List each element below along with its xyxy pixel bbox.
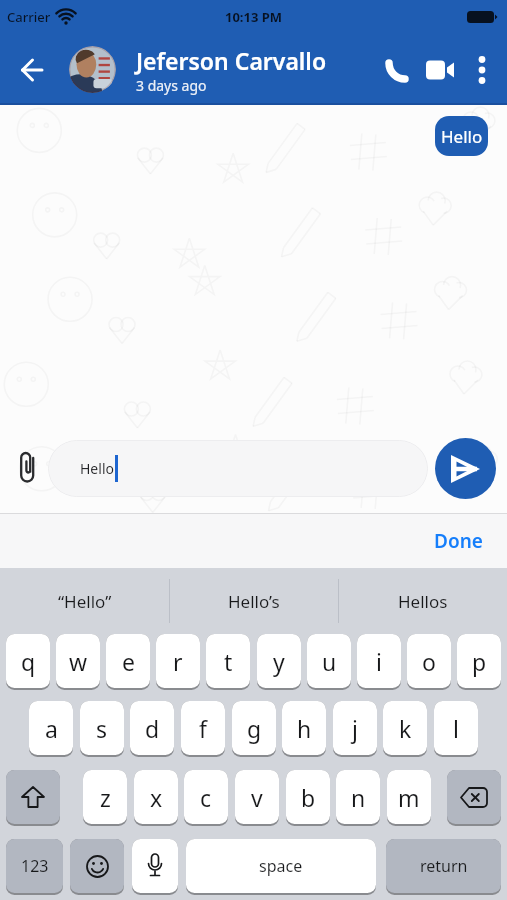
staticText: h — [297, 713, 312, 744]
button[interactable] — [69, 46, 116, 93]
button[interactable]: Done — [434, 528, 483, 554]
button[interactable] — [132, 839, 178, 895]
button[interactable]: e — [106, 634, 150, 690]
staticText: Hello’s — [228, 590, 280, 613]
staticText: return — [420, 855, 468, 877]
staticText: “Hello” — [58, 590, 112, 613]
button[interactable]: Hello — [48, 440, 428, 497]
staticText: t — [224, 646, 233, 677]
button[interactable]: x — [134, 770, 178, 826]
staticText: u — [322, 646, 337, 677]
button[interactable]: space — [186, 839, 376, 895]
button[interactable]: k — [383, 701, 427, 757]
staticText: i — [376, 646, 382, 677]
staticText: g — [247, 713, 262, 744]
button[interactable]: g — [232, 701, 276, 757]
staticText: q — [21, 646, 36, 677]
staticText: e — [122, 646, 135, 677]
staticText: v — [251, 782, 263, 813]
button[interactable]: Jeferson Carvallo — [136, 45, 327, 95]
button[interactable]: l — [434, 701, 478, 757]
button[interactable]: Hello’s — [170, 568, 338, 634]
button[interactable] — [6, 770, 60, 826]
staticText: Jeferson Carvallo — [136, 45, 327, 76]
button[interactable]: a — [29, 701, 73, 757]
staticText: r — [173, 646, 183, 677]
staticText: j — [352, 713, 358, 744]
button[interactable]: p — [457, 634, 501, 690]
staticText: x — [150, 782, 163, 813]
staticText: Hello — [441, 125, 483, 148]
button[interactable] — [435, 438, 496, 499]
button[interactable] — [17, 450, 41, 488]
staticText: k — [399, 713, 412, 744]
button[interactable]: o — [407, 634, 451, 690]
button[interactable]: u — [307, 634, 351, 690]
staticText: b — [301, 782, 316, 813]
button[interactable]: q — [6, 634, 50, 690]
staticText: p — [472, 646, 487, 677]
staticText: m — [398, 782, 420, 813]
button[interactable]: Hello — [435, 116, 488, 156]
button[interactable]: Hellos — [339, 568, 507, 634]
button[interactable]: w — [56, 634, 100, 690]
button[interactable]: h — [282, 701, 326, 757]
button[interactable]: y — [257, 634, 301, 690]
button[interactable]: n — [336, 770, 380, 826]
staticText: c — [200, 782, 212, 813]
button[interactable] — [10, 48, 54, 92]
staticText: d — [145, 713, 160, 744]
button[interactable] — [421, 50, 461, 90]
button[interactable]: v — [235, 770, 279, 826]
button[interactable]: r — [156, 634, 200, 690]
staticText: Done — [434, 528, 483, 554]
button[interactable] — [447, 770, 501, 826]
button[interactable]: i — [357, 634, 401, 690]
staticText: space — [259, 855, 303, 877]
staticText: l — [453, 713, 459, 744]
button[interactable]: c — [184, 770, 228, 826]
staticText: 123 — [21, 855, 49, 877]
button[interactable] — [379, 50, 419, 90]
staticText: o — [422, 646, 436, 677]
staticText: 10:13 PM — [225, 8, 283, 26]
button[interactable]: z — [83, 770, 127, 826]
button[interactable]: s — [80, 701, 124, 757]
staticText: w — [69, 646, 88, 677]
button[interactable] — [461, 49, 503, 91]
button[interactable]: b — [286, 770, 330, 826]
button[interactable]: “Hello” — [0, 568, 169, 634]
staticText: f — [199, 713, 207, 744]
button[interactable]: 123 — [6, 839, 63, 895]
staticText: Hellos — [398, 590, 448, 613]
staticText: s — [96, 713, 108, 744]
button[interactable]: j — [333, 701, 377, 757]
button[interactable]: f — [181, 701, 225, 757]
button[interactable]: m — [387, 770, 431, 826]
staticText: y — [273, 646, 285, 677]
staticText: Hello — [80, 459, 114, 478]
staticText: z — [100, 782, 111, 813]
staticText: Carrier — [7, 8, 51, 26]
button[interactable]: t — [206, 634, 250, 690]
staticText: 3 days ago — [136, 76, 207, 95]
button[interactable]: d — [130, 701, 174, 757]
button[interactable] — [70, 839, 124, 895]
staticText: n — [351, 782, 366, 813]
staticText: a — [45, 713, 58, 744]
button[interactable]: return — [386, 839, 501, 895]
